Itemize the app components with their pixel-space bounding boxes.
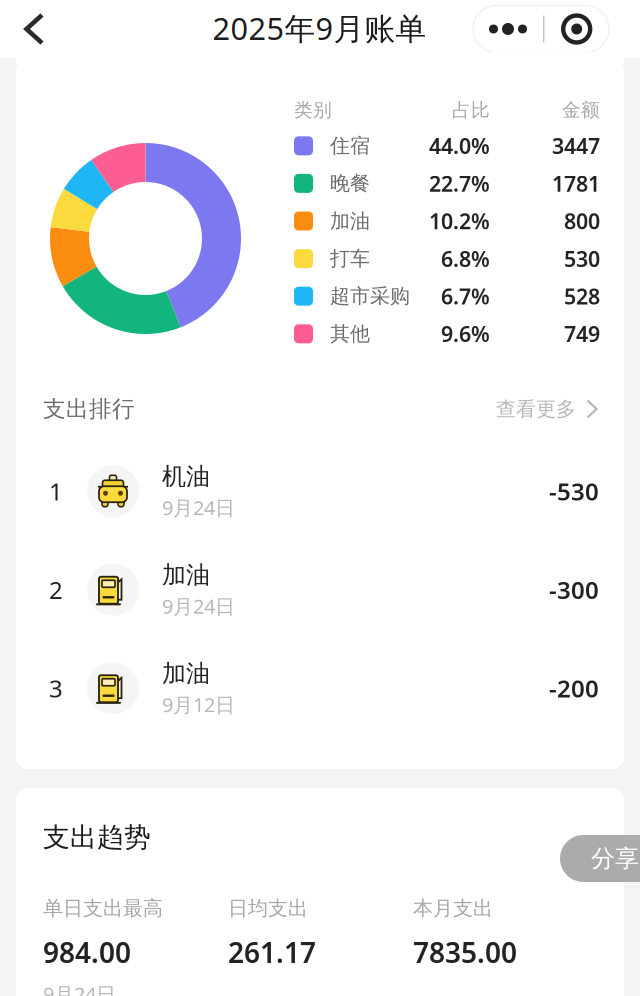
- staticText: 9月24日: [162, 593, 235, 619]
- staticText: 528: [564, 282, 600, 310]
- staticText: 3: [49, 672, 63, 704]
- staticText: -200: [549, 672, 599, 704]
- staticText: 2: [49, 574, 63, 606]
- staticText: 7835.00: [413, 934, 517, 971]
- staticText: 加油: [330, 209, 370, 233]
- staticText: 984.00: [43, 934, 131, 971]
- staticText: 22.7%: [429, 169, 490, 197]
- staticText: 占比: [452, 98, 490, 121]
- staticText: 10.2%: [429, 207, 490, 235]
- staticText: 6.7%: [441, 282, 490, 310]
- button[interactable]: 3: [49, 639, 599, 737]
- staticText: 类别: [294, 98, 332, 121]
- staticText: 9月12日: [162, 691, 235, 718]
- button[interactable]: 1: [49, 442, 599, 540]
- staticText: 261.17: [228, 934, 316, 971]
- staticText: 住宿: [330, 133, 370, 158]
- button[interactable]: 关闭: [544, 5, 609, 52]
- staticText: 支出趋势: [43, 821, 151, 854]
- staticText: 机油: [162, 462, 210, 491]
- staticText: 分享: [591, 844, 639, 873]
- button[interactable]: 分享: [560, 835, 640, 882]
- staticText: 6.8%: [441, 244, 490, 273]
- staticText: 打车: [330, 246, 370, 271]
- button[interactable]: 2: [49, 540, 599, 639]
- staticText: 9月24日: [162, 494, 235, 521]
- staticText: 9.6%: [441, 320, 490, 348]
- staticText: 1: [49, 475, 63, 507]
- staticText: 金额: [562, 98, 600, 121]
- staticText: 晚餐: [330, 171, 370, 196]
- staticText: 9月24日: [43, 981, 116, 996]
- button[interactable]: 查看更多: [496, 397, 598, 421]
- staticText: 1781: [552, 169, 600, 197]
- staticText: 2025年9月账单: [212, 8, 426, 48]
- staticText: 加油: [162, 560, 210, 590]
- staticText: 530: [564, 244, 600, 273]
- staticText: 749: [564, 320, 600, 348]
- staticText: 44.0%: [429, 132, 490, 160]
- staticText: 日均支出: [228, 896, 308, 921]
- staticText: 3447: [552, 132, 600, 160]
- button[interactable]: 返回: [0, 0, 68, 58]
- staticText: 其他: [330, 321, 370, 346]
- staticText: 本月支出: [413, 896, 493, 921]
- staticText: 超市采购: [330, 284, 410, 308]
- button[interactable]: 更多: [473, 5, 543, 52]
- staticText: 支出排行: [43, 395, 135, 423]
- staticText: 单日支出最高: [43, 896, 163, 921]
- staticText: -530: [549, 475, 599, 507]
- staticText: 800: [564, 207, 600, 235]
- staticText: -300: [549, 574, 599, 606]
- staticText: 加油: [162, 659, 210, 688]
- staticText: 查看更多: [496, 397, 576, 421]
